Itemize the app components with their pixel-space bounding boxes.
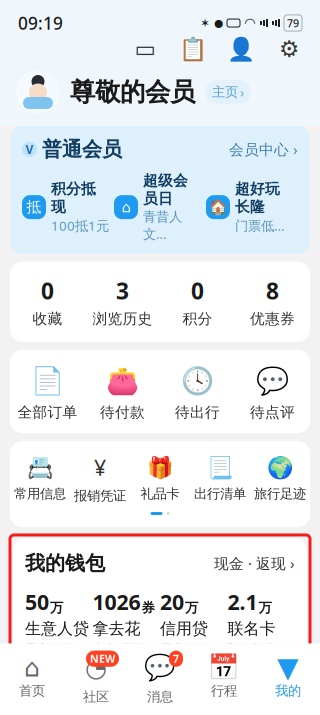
staticText: 📄 [31,366,64,396]
staticText: 🏠 [209,199,227,215]
staticText: 0 [191,276,204,306]
button[interactable]: 📇 [10,455,70,502]
staticText: ⌂ [121,199,130,215]
staticText: 普通会员 [42,137,122,162]
button[interactable]: ◔ [64,651,128,705]
staticText: 20 [160,588,184,616]
staticText: 万 [50,599,63,616]
staticText: 行程 [211,683,237,699]
staticText: 礼品卡 [140,486,179,502]
staticText: 3 [116,276,129,306]
button[interactable]: 📅 [192,657,256,699]
staticText: ▼ [277,652,299,683]
button[interactable]: ¥ [70,453,130,504]
button[interactable]: ⌂ [0,657,64,699]
staticText: 最高可借 [25,641,73,656]
staticText: 2.1 [227,588,257,616]
button[interactable]: 主页 [205,80,251,104]
staticText: 收藏 [32,310,62,328]
staticText: 万 [258,599,271,616]
staticText: 主页 [212,84,238,100]
button[interactable]: 📃 [190,455,250,502]
staticText: 100抵1元 [51,217,109,234]
staticText: ● [214,17,223,29]
button[interactable]: 📄 [10,366,85,421]
staticText: 我的 [275,683,301,699]
staticText: 报销凭证 [74,488,126,504]
staticText: 📃 [206,455,233,480]
staticText: 券 [141,599,154,616]
staticText: 09:19 [18,11,63,34]
button[interactable]: 3 [85,276,160,328]
staticText: 📅 [208,653,240,682]
button[interactable]: 👛 [85,366,160,421]
staticText: 🌍 [266,455,293,480]
staticText: 查收你的旅行足迹 › [169,696,298,715]
button[interactable]: 💬 [235,366,310,421]
button[interactable]: 🌍 [250,455,310,502]
staticText: ✶ [200,16,210,30]
button[interactable]: 8 [235,276,310,328]
staticText: 会员中心 › [229,139,298,159]
staticText: 7 [173,652,179,666]
staticText: 生意人贷 [25,619,89,639]
staticText: 全部订单 [17,403,77,421]
staticText: 预估额度 [227,641,275,656]
staticText: 现金 · 返现 › [214,553,295,573]
staticText: 我的钱包 [25,551,105,576]
staticText: 📇 [26,455,53,480]
button[interactable]: Contacts [228,36,254,62]
staticText: 待付款 [100,403,145,421]
staticText: 首页 [19,683,45,699]
staticText: 联名卡 [227,619,275,639]
button[interactable]: 0 [10,276,85,328]
staticText: ◠ [244,15,256,30]
staticText: 待点评 [250,403,295,421]
staticText: 🕓 [181,366,214,396]
staticText: 超级会员日 [143,172,188,208]
staticText: 万 [185,599,198,616]
button[interactable]: Sign in [180,36,206,62]
staticText: 门票低򁼷… [235,217,285,234]
staticText: 1026 [92,588,140,616]
staticText: ⚙ [279,36,299,62]
staticText: 先享后还 [92,641,140,656]
staticText: 旅行足迹 [254,486,306,502]
staticText: 🎁 [146,455,173,480]
staticText: 尊敬的会员 [70,76,195,107]
staticText: 浏览历史 [92,310,152,328]
staticText: 待出行 [175,403,220,421]
button[interactable]: 💬 [128,651,192,705]
staticText: › [240,83,244,101]
staticText: 抵 [26,198,41,216]
staticText: 最高可借 [160,641,208,656]
button[interactable]: 🕓 [160,366,235,421]
button[interactable]: 我的钱包 [13,538,307,669]
button[interactable]: 0 [160,276,235,328]
staticText: 8 [266,276,279,306]
staticText: 优惠券 [250,310,295,328]
staticText: 消息 [147,689,173,705]
button[interactable]: Settings [276,36,302,62]
staticText: ¥ [94,453,106,482]
staticText: NEW [90,652,115,666]
staticText: ▭ [134,36,155,62]
staticText: 出行清单 [194,486,246,502]
staticText: 超好玩长隆 [235,180,280,216]
staticText: 拿去花 [92,619,140,639]
staticText: 互动参与 [22,693,102,715]
button[interactable]: Scan [132,36,158,62]
staticText: 0 [41,276,54,306]
staticText: 积分抵现 [51,180,96,216]
staticText: 79 [287,16,299,30]
staticText: 50 [25,588,49,616]
staticText: 👤 [227,36,255,62]
staticText: 💬 [144,653,176,682]
button[interactable]: 🎁 [130,455,190,502]
button[interactable]: ▼ [256,657,320,699]
staticText: 积分 [182,310,212,328]
staticText: 青昔人文… [143,209,182,243]
staticText: 💬 [256,366,289,396]
button[interactable]: V [10,126,310,254]
staticText: V [25,141,33,157]
